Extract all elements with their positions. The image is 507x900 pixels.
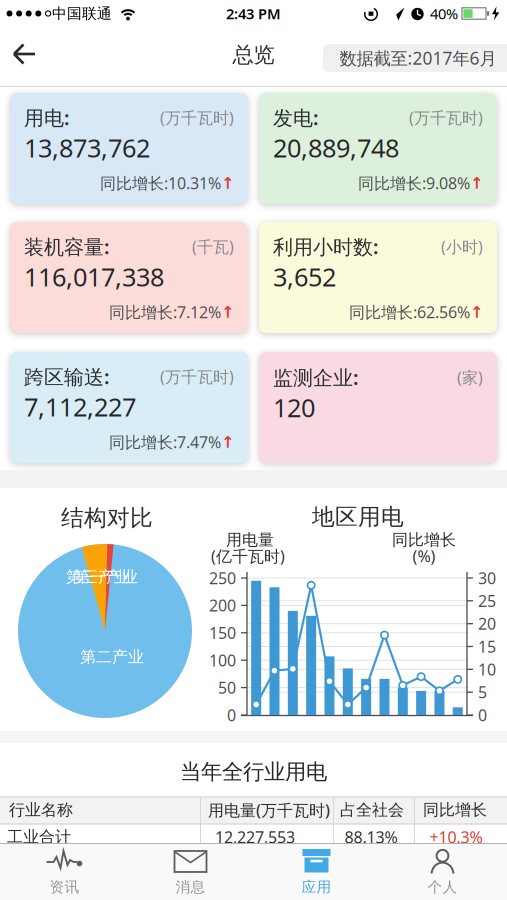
staticText: 40% <box>430 4 458 23</box>
button[interactable]: 个人 <box>379 844 505 899</box>
staticText: 行业名称 <box>9 800 73 820</box>
staticText: 30 <box>478 567 496 589</box>
staticText: 利用小时数: <box>273 233 379 260</box>
staticText: 20 <box>478 613 496 634</box>
staticText: 资讯 <box>49 878 79 896</box>
staticText: 5 <box>478 681 487 703</box>
staticText: 当年全行业用电 <box>180 759 327 785</box>
staticText: 占全社会 <box>340 800 404 820</box>
staticText: (万千瓦时) <box>160 107 234 128</box>
staticText: 250 <box>209 567 236 589</box>
staticText: (家) <box>457 367 483 388</box>
staticText: 100 <box>209 650 236 671</box>
staticText: 10 <box>478 659 496 680</box>
staticText: ↑ <box>221 303 234 321</box>
staticText: 116,017,338 <box>24 260 164 293</box>
button[interactable]: Back <box>5 32 49 76</box>
staticText: 88.13% <box>344 826 397 848</box>
staticText: 中国联通 <box>52 4 112 22</box>
staticText: 地区用电 <box>312 503 404 531</box>
staticText: 15 <box>478 636 496 657</box>
staticText: 2:43 PM <box>226 4 281 23</box>
staticText: 同比增长:10.31% <box>100 172 221 194</box>
staticText: 装机容量: <box>24 233 110 260</box>
button[interactable]: 资讯 <box>1 844 127 899</box>
staticText: 个人 <box>427 878 457 896</box>
staticText: +10.3% <box>429 826 482 848</box>
staticText: 用电量 <box>226 530 274 550</box>
staticText: 同比增长:7.47% <box>109 431 221 453</box>
staticText: (小时) <box>441 236 483 257</box>
staticText: 50 <box>218 677 236 698</box>
staticText: 200 <box>209 595 236 616</box>
staticText: 同比增长:62.56% <box>349 301 470 323</box>
button[interactable]: 消息 <box>127 844 253 899</box>
button[interactable]: 数据截至:2017年6月 <box>323 44 507 72</box>
staticText: 用电: <box>24 104 70 131</box>
staticText: 发电: <box>273 104 319 131</box>
staticText: 第一产业 <box>74 567 138 587</box>
staticText: 消息 <box>175 878 205 896</box>
staticText: 应用 <box>301 878 331 896</box>
staticText: 同比增长 <box>392 530 456 550</box>
staticText: 同比增长:7.12% <box>109 301 221 323</box>
staticText: ↑ <box>470 303 483 321</box>
staticText: ↑ <box>221 433 234 451</box>
staticText: (万千瓦时) <box>409 107 483 128</box>
staticText: 7,112,227 <box>24 390 136 423</box>
staticText: 数据截至:2017年6月 <box>339 46 496 69</box>
staticText: 3,652 <box>273 260 336 293</box>
staticText: ↑ <box>221 174 234 192</box>
staticText: 20,889,748 <box>273 131 399 164</box>
button[interactable]: 应用 <box>253 844 379 899</box>
staticText: 第三产业 <box>66 567 130 587</box>
staticText: 监测企业: <box>273 364 359 391</box>
staticText: 25 <box>478 590 496 611</box>
staticText: (亿千瓦时) <box>211 545 285 567</box>
staticText: 第二产业 <box>80 647 144 667</box>
staticText: ↑ <box>470 174 483 192</box>
staticText: 12,227,553 <box>215 826 295 848</box>
staticText: 总览 <box>232 42 274 68</box>
staticText: 结构对比 <box>61 504 153 532</box>
staticText: (%) <box>412 545 435 567</box>
staticText: 同比增长:9.08% <box>358 172 470 194</box>
staticText: 同比增长 <box>423 800 487 820</box>
staticText: 120 <box>273 391 315 424</box>
staticText: 150 <box>209 622 236 643</box>
staticText: 工业合计 <box>7 827 71 847</box>
staticText: 0 <box>227 704 236 726</box>
staticText: 用电量(万千瓦时) <box>208 799 330 821</box>
staticText: (千瓦) <box>192 236 234 257</box>
staticText: (万千瓦时) <box>160 366 234 387</box>
staticText: 跨区输送: <box>24 363 110 390</box>
staticText: 13,873,762 <box>24 131 150 164</box>
staticText: 0 <box>478 704 487 726</box>
